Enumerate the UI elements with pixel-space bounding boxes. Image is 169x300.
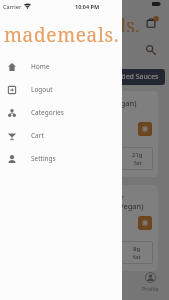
button[interactable]: Add to cart [138, 216, 152, 230]
staticText: Home [31, 62, 50, 71]
staticText: Crunchy Organic Peanut Butter Sweet Chil… [14, 192, 145, 212]
button[interactable]: Sweet Chilli Vegan Chicken (Vegan) [6, 91, 158, 177]
staticText: Settings [31, 154, 56, 163]
staticText: Cart [31, 131, 44, 140]
button[interactable]: Logout [0, 78, 122, 101]
staticText: mademeals. [4, 22, 120, 48]
staticText: Logout [31, 85, 53, 94]
staticText: Carrier [3, 3, 22, 10]
button[interactable]: Crunchy Organic Peanut Butter Sweet Chil… [6, 185, 158, 271]
staticText: fat [134, 159, 142, 167]
staticText: Profile [142, 285, 159, 292]
staticText: 21g [132, 151, 143, 159]
staticText: 8g [133, 245, 141, 253]
staticText: Categories [31, 108, 64, 117]
button[interactable]: Profile [131, 271, 169, 300]
staticText: cal [25, 159, 33, 167]
button[interactable]: Settings [0, 147, 122, 170]
button[interactable]: Cart [0, 124, 122, 147]
staticText: fat [133, 253, 141, 261]
button[interactable]: Bottled Sauces [104, 69, 165, 85]
button[interactable]: Categories [0, 101, 122, 124]
button[interactable]: Add to cart [138, 122, 152, 136]
staticText: Bottled Sauces [110, 72, 159, 82]
button[interactable]: Home [0, 55, 122, 78]
button[interactable]: Search [145, 44, 156, 55]
staticText: Sweet Chilli Vegan Chicken (Vegan) [14, 98, 137, 108]
button[interactable]: Cart [145, 15, 160, 30]
staticText: 10:04 PM [75, 3, 100, 10]
staticText: 510 [23, 151, 34, 159]
staticText: mademeals. [31, 13, 140, 32]
